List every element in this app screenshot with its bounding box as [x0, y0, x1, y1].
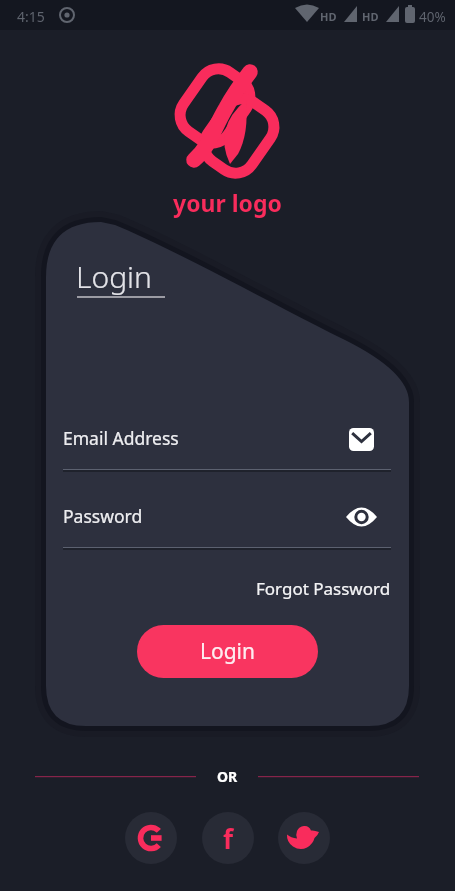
staticText: 4:15	[17, 7, 45, 26]
staticText: OR	[217, 767, 238, 786]
staticText: your logo	[173, 187, 282, 218]
staticText: Email Address	[63, 426, 179, 450]
staticText: Password	[63, 504, 143, 528]
button[interactable]: Forgot Password	[256, 577, 391, 600]
staticText: Login	[200, 637, 256, 666]
button[interactable]	[63, 420, 391, 472]
staticText: Login	[76, 256, 152, 297]
staticText: f	[223, 821, 234, 856]
button[interactable]: f	[202, 812, 254, 864]
button[interactable]	[342, 498, 382, 536]
button[interactable]: Login	[137, 625, 318, 678]
staticText: 40%	[419, 8, 446, 26]
staticText: HD	[362, 9, 379, 24]
button[interactable]	[63, 498, 391, 550]
button[interactable]	[125, 812, 177, 864]
staticText: HD	[320, 9, 337, 24]
staticText: Forgot Password	[256, 577, 391, 600]
button[interactable]	[278, 812, 330, 864]
